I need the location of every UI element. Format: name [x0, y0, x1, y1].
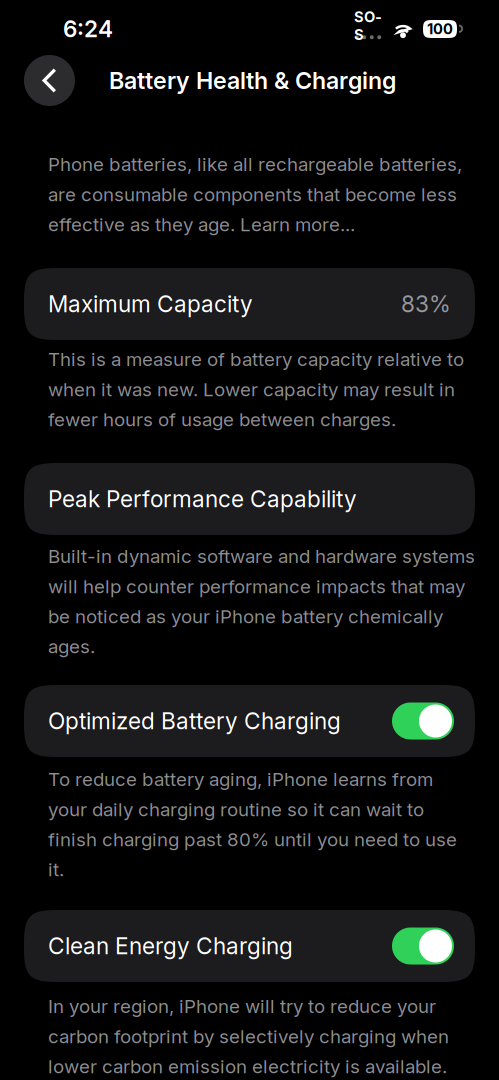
staticText: 83%	[401, 290, 451, 318]
staticText: Clean Energy Charging	[48, 932, 293, 960]
button[interactable]: Optimized Battery Charging	[24, 685, 475, 757]
button[interactable]: Back	[24, 55, 75, 106]
button[interactable]: Clean Energy Charging	[24, 910, 475, 982]
staticText: Phone batteries, like all rechargeable b…	[48, 153, 462, 236]
staticText: Battery Health & Charging	[109, 66, 396, 95]
staticText: In your region, iPhone will try to reduc…	[48, 995, 449, 1078]
staticText: Built-in dynamic software and hardware s…	[48, 545, 475, 658]
button[interactable]: Peak Performance Capability	[24, 463, 475, 535]
staticText: Maximum Capacity	[48, 290, 253, 318]
staticText: This is a measure of battery capacity re…	[48, 348, 464, 431]
staticText: 100	[427, 20, 453, 38]
staticText: 6:24	[63, 15, 113, 43]
staticText: SOS	[354, 8, 382, 43]
button[interactable]: Maximum Capacity	[24, 268, 475, 340]
staticText: Optimized Battery Charging	[48, 707, 341, 735]
staticText: Peak Performance Capability	[48, 485, 357, 513]
staticText: To reduce battery aging, iPhone learns f…	[48, 768, 457, 881]
